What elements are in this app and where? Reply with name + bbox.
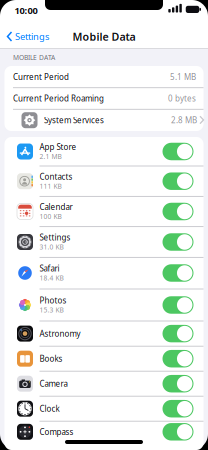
staticText: 18.4 KB xyxy=(39,274,63,282)
button[interactable]: Camera xyxy=(162,375,193,392)
staticText: Photos xyxy=(39,295,66,306)
staticText: Settings xyxy=(15,30,49,43)
staticText: Calendar xyxy=(39,202,72,212)
staticText: 0 bytes xyxy=(168,93,196,104)
staticText: Books xyxy=(39,353,62,364)
button[interactable]: Settings xyxy=(162,233,193,251)
staticText: Astronomy xyxy=(39,328,80,339)
button[interactable]: Books xyxy=(162,350,193,367)
button[interactable]: App Store xyxy=(162,143,193,160)
staticText: 111 KB xyxy=(39,182,61,191)
staticText: Settings xyxy=(39,232,70,243)
staticText: Current Period xyxy=(13,71,69,82)
button[interactable]: Compass xyxy=(162,423,193,441)
staticText: 2.1 MB xyxy=(39,152,61,161)
staticText: Mobile Data xyxy=(72,29,135,44)
staticText: 5.1 MB xyxy=(170,71,196,82)
staticText: Current Period Roaming xyxy=(13,93,104,104)
staticText: App Store xyxy=(39,142,76,152)
staticText: 10:00 xyxy=(14,4,37,17)
staticText: 31.0 KB xyxy=(39,243,63,251)
staticText: Compass xyxy=(39,426,73,437)
staticText: Contacts xyxy=(39,171,72,182)
staticText: 2.8 MB xyxy=(171,115,197,125)
staticText: Safari xyxy=(39,263,59,274)
button[interactable]: Photos xyxy=(162,296,193,314)
staticText: Camera xyxy=(39,378,67,389)
staticText: System Services xyxy=(44,115,104,125)
staticText: 100 KB xyxy=(39,212,61,221)
button[interactable]: Calendar xyxy=(162,203,193,220)
staticText: Clock xyxy=(39,403,59,414)
button[interactable]: Safari xyxy=(162,264,193,282)
button[interactable]: Astronomy xyxy=(162,325,193,342)
staticText: MOBILE DATA xyxy=(13,53,55,62)
button[interactable]: System Services xyxy=(4,109,203,131)
button[interactable]: Contacts xyxy=(162,172,193,190)
button[interactable]: Back to Settings xyxy=(6,28,58,44)
button[interactable]: Clock xyxy=(162,400,193,417)
staticText: 15.3 KB xyxy=(39,306,63,314)
